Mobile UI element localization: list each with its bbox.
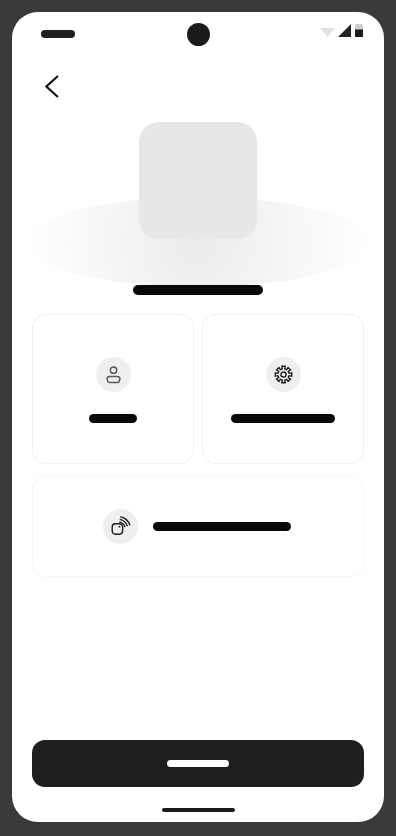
button[interactable]: Settings bbox=[203, 315, 363, 463]
button[interactable]: Profile bbox=[33, 315, 193, 463]
button[interactable]: Back bbox=[34, 68, 70, 104]
button[interactable]: Continue bbox=[32, 740, 364, 787]
button[interactable]: Connect device bbox=[33, 476, 363, 576]
